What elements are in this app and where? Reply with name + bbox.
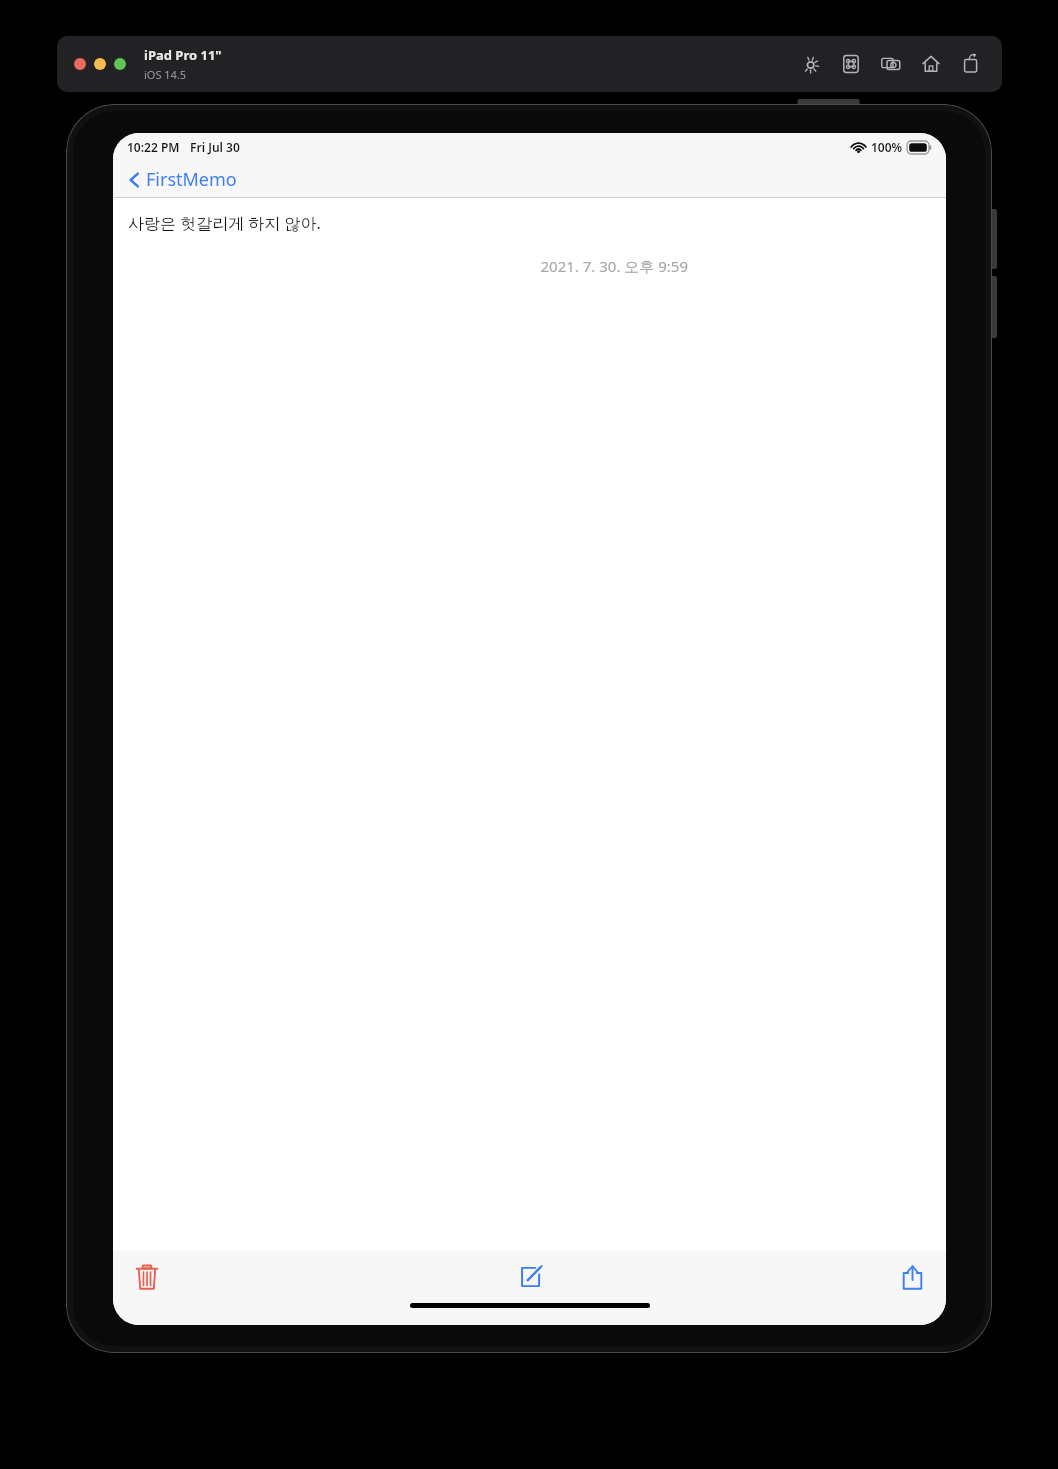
staticText: 사랑은 헛갈리게 하지 않아.	[128, 212, 321, 234]
button[interactable]: Share	[892, 1257, 932, 1297]
button[interactable]: Screenshot	[880, 53, 902, 75]
button[interactable]: FirstMemo	[124, 164, 241, 195]
button[interactable]: Close	[74, 58, 86, 70]
button[interactable]: Appearance	[800, 53, 822, 75]
staticText: iOS 14.5	[144, 67, 187, 82]
button[interactable]: Delete	[127, 1257, 167, 1297]
button[interactable]: Keyboard	[840, 53, 862, 75]
button[interactable]: Minimise	[94, 58, 106, 70]
button[interactable]: Home	[920, 53, 942, 75]
staticText: 10:22 PM	[127, 139, 180, 155]
staticText: FirstMemo	[146, 167, 237, 192]
staticText: 100%	[871, 139, 903, 155]
button[interactable]: Rotate	[960, 53, 982, 75]
button[interactable]: Compose	[508, 1255, 552, 1299]
staticText: Fri Jul 30	[190, 139, 240, 155]
staticText: iPad Pro 11"	[144, 46, 222, 64]
staticText: 2021. 7. 30. 오후 9:59	[113, 256, 688, 276]
button[interactable]: Zoom	[114, 58, 126, 70]
